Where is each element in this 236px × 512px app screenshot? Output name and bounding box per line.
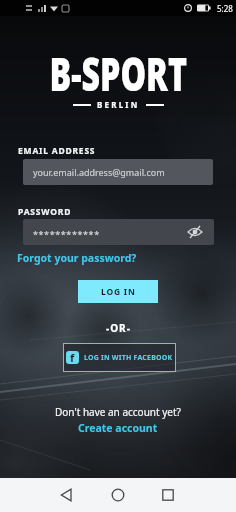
- button[interactable]: Forgot your password?: [17, 251, 137, 265]
- staticText: f: [70, 351, 75, 363]
- button[interactable]: [55, 484, 77, 506]
- staticText: LOG IN: [101, 286, 136, 298]
- staticText: EMAIL ADDRESS: [18, 145, 96, 157]
- button[interactable]: LOG IN: [78, 280, 158, 303]
- staticText: B-SPORT: [50, 42, 187, 105]
- staticText: LOG IN WITH FACEBOOK: [84, 353, 173, 363]
- staticText: BERLIN: [97, 99, 140, 110]
- button[interactable]: your.email.address@gmail.com: [23, 159, 213, 185]
- button[interactable]: ************: [23, 219, 214, 245]
- staticText: -OR-: [106, 321, 131, 335]
- button[interactable]: [157, 484, 179, 506]
- button[interactable]: f: [63, 343, 176, 372]
- staticText: Don't have an account yet?: [55, 405, 181, 419]
- button[interactable]: Create account: [78, 421, 158, 435]
- staticText: ************: [33, 228, 100, 240]
- button[interactable]: [107, 484, 129, 506]
- staticText: PASSWORD: [18, 206, 72, 218]
- staticText: your.email.address@gmail.com: [33, 166, 165, 178]
- staticText: 5:28: [217, 3, 233, 14]
